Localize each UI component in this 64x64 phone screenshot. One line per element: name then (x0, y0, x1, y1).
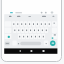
button[interactable] (7, 15, 51, 18)
button[interactable] (49, 40, 56, 46)
button[interactable] (51, 33, 57, 39)
button[interactable] (19, 40, 42, 46)
button[interactable] (4, 40, 12, 46)
button[interactable] (14, 48, 25, 54)
button[interactable] (4, 33, 12, 39)
button[interactable] (39, 10, 55, 15)
button[interactable] (26, 48, 37, 54)
button[interactable] (8, 10, 26, 15)
button[interactable] (38, 48, 49, 54)
